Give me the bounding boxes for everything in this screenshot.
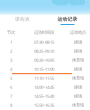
staticText: 15:50~16:35 xyxy=(34,102,54,108)
staticText: 体育馆 xyxy=(72,57,84,63)
staticText: 6 xyxy=(10,84,12,90)
staticText: 4 xyxy=(10,66,12,72)
staticText: 2 xyxy=(10,48,12,54)
staticText: 7 xyxy=(10,93,12,99)
button[interactable]: 课程表 xyxy=(0,16,45,27)
staticText: 操场 xyxy=(74,66,82,72)
staticText: 节次 xyxy=(7,30,15,35)
staticText: 5 xyxy=(10,75,12,81)
staticText: 11:10~11:55 xyxy=(34,75,54,81)
staticText: 操场 xyxy=(74,48,82,54)
staticText: 09:20~10:05 xyxy=(34,57,54,63)
staticText: 1 xyxy=(10,39,12,45)
staticText: 14:55~15:40 xyxy=(34,93,54,99)
staticText: 8 xyxy=(10,102,12,108)
staticText: 3 xyxy=(10,57,12,63)
staticText: 运动时间段 xyxy=(34,30,54,35)
staticText: 08:25~09:10 xyxy=(34,48,54,54)
staticText: 运动记录 xyxy=(57,16,77,22)
staticText: 体育馆 xyxy=(72,75,84,81)
staticText: 运动地点 xyxy=(70,30,86,35)
staticText: 07:30~08:15 xyxy=(34,39,54,45)
staticText: 10:15~11:00 xyxy=(34,66,54,72)
staticText: 体育馆 xyxy=(72,102,84,108)
button[interactable]: 运动记录 xyxy=(45,16,90,27)
staticText: 14:00~14:45 xyxy=(34,84,54,90)
staticText: 操场 xyxy=(74,39,82,45)
staticText: 课程表 xyxy=(15,16,30,22)
staticText: 操场 xyxy=(74,84,82,90)
staticText: 操场 xyxy=(74,93,82,99)
